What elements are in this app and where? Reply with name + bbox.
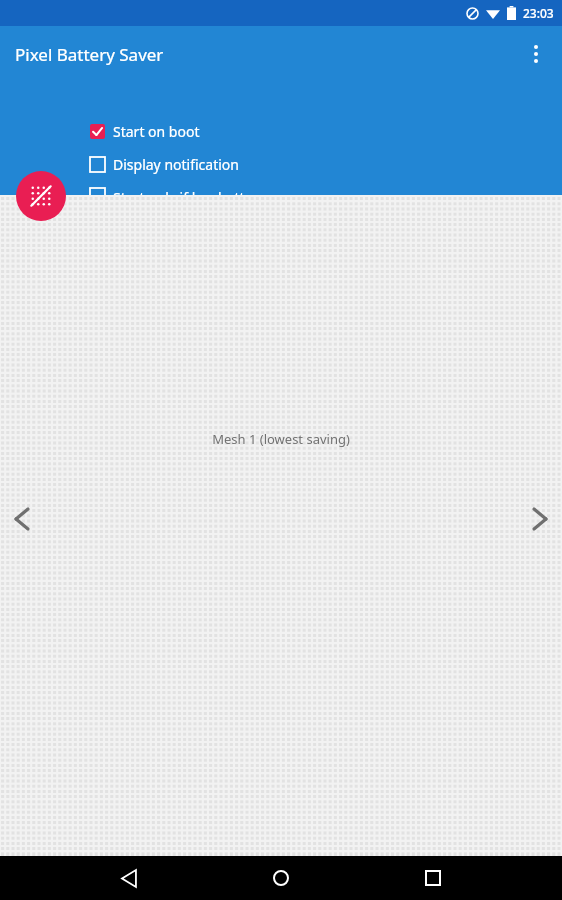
staticText: Pixel Battery Saver: [15, 43, 164, 66]
staticText: Display notification: [113, 155, 239, 174]
button[interactable]: Start on boot: [89, 122, 200, 141]
staticText: Start only if low battery: [113, 188, 266, 196]
button[interactable]: Start only if low battery: [89, 188, 266, 196]
button[interactable]: More options: [516, 34, 556, 74]
button[interactable]: Recent apps: [411, 856, 455, 900]
staticText: 23:03: [523, 5, 554, 21]
staticText: Mesh 1 (lowest saving): [212, 430, 350, 448]
button[interactable]: Previous mesh: [0, 497, 44, 541]
button[interactable]: Toggle mesh overlay: [16, 171, 66, 221]
staticText: Start on boot: [113, 122, 200, 141]
button[interactable]: Next mesh: [518, 497, 562, 541]
button[interactable]: Home: [259, 856, 303, 900]
button[interactable]: Back: [108, 856, 152, 900]
button[interactable]: Display notification: [89, 155, 239, 174]
